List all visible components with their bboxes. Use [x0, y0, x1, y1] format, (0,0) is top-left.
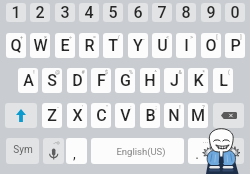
- button[interactable]: ,: [66, 138, 87, 164]
- button[interactable]: D: [67, 68, 87, 93]
- button[interactable]: G: [115, 68, 135, 93]
- staticText: W: [33, 36, 48, 55]
- staticText: $: [105, 69, 108, 75]
- button[interactable]: L: [213, 68, 233, 93]
- staticText: :: [130, 104, 132, 110]
- staticText: ×: [44, 34, 47, 40]
- staticText: 7: [157, 3, 167, 22]
- staticText: U: [157, 36, 168, 55]
- button[interactable]: Shift: [5, 103, 37, 128]
- button[interactable]: .: [188, 138, 209, 164]
- staticText: !: [179, 104, 181, 110]
- button[interactable]: 6: [128, 3, 148, 22]
- button[interactable]: N: [164, 103, 184, 128]
- staticText: -: [57, 104, 59, 110]
- staticText: /: [117, 34, 120, 40]
- staticText: !: [33, 69, 35, 75]
- staticText: @: [55, 69, 60, 75]
- button[interactable]: I: [176, 33, 196, 58]
- button[interactable]: 9: [201, 3, 221, 22]
- button[interactable]: E: [55, 33, 75, 58]
- button[interactable]: Enter: [213, 138, 244, 164]
- button[interactable]: 5: [103, 3, 123, 22]
- staticText: Sym: [13, 144, 33, 156]
- button[interactable]: V: [115, 103, 135, 128]
- button[interactable]: Q: [6, 33, 26, 58]
- button[interactable]: H: [140, 68, 160, 93]
- staticText: R: [84, 36, 95, 55]
- staticText: K: [193, 71, 204, 90]
- staticText: *: [202, 69, 205, 75]
- button[interactable]: Z: [42, 103, 62, 128]
- staticText: [: [216, 34, 218, 40]
- button[interactable]: R: [79, 33, 99, 58]
- staticText: .: [195, 146, 199, 162]
- staticText: 8: [181, 3, 191, 22]
- staticText: I: [184, 36, 189, 55]
- staticText: ?: [202, 104, 205, 110]
- staticText: &: [178, 69, 182, 75]
- button[interactable]: U: [152, 33, 172, 58]
- staticText: +: [20, 34, 23, 40]
- button[interactable]: 2: [30, 3, 50, 22]
- staticText: S: [47, 71, 57, 90]
- button[interactable]: X: [67, 103, 87, 128]
- staticText: ^: [154, 69, 157, 75]
- button[interactable]: Backspace: [213, 103, 244, 128]
- button[interactable]: Y: [128, 33, 148, 58]
- staticText: ]: [240, 34, 242, 40]
- staticText: ⋯: [203, 139, 208, 145]
- staticText: B: [145, 106, 156, 125]
- staticText: D: [72, 71, 83, 90]
- staticText: 6: [133, 3, 143, 22]
- button[interactable]: 8: [176, 3, 196, 22]
- staticText: 2: [35, 3, 45, 22]
- staticText: 9: [206, 3, 216, 22]
- button[interactable]: C: [91, 103, 111, 128]
- button[interactable]: S: [42, 68, 62, 93]
- staticText: T: [108, 36, 118, 55]
- staticText: ,: [73, 146, 76, 162]
- staticText: O: [205, 36, 217, 55]
- staticText: 4: [84, 3, 94, 22]
- button[interactable]: P: [225, 33, 245, 58]
- button[interactable]: 0: [225, 3, 245, 22]
- button[interactable]: English(US): [91, 138, 184, 164]
- staticText: C: [96, 106, 107, 125]
- staticText: >: [190, 34, 193, 40]
- staticText: Q: [10, 36, 22, 55]
- button[interactable]: M: [188, 103, 208, 128]
- staticText: X: [72, 106, 83, 125]
- staticText: English(US): [116, 146, 166, 157]
- button[interactable]: 1: [6, 3, 26, 22]
- button[interactable]: Voice input: [43, 138, 64, 164]
- button[interactable]: O: [201, 33, 221, 58]
- button[interactable]: B: [140, 103, 160, 128]
- button[interactable]: 7: [152, 3, 172, 22]
- staticText: 1: [11, 3, 21, 22]
- staticText: P: [230, 36, 241, 55]
- staticText: A: [23, 71, 34, 90]
- staticText: L: [219, 71, 228, 90]
- button[interactable]: A: [18, 68, 38, 93]
- button[interactable]: 4: [79, 3, 99, 22]
- staticText: _: [142, 34, 145, 40]
- staticText: ': [82, 104, 83, 110]
- staticText: 3: [60, 3, 70, 22]
- button[interactable]: 3: [55, 3, 75, 22]
- staticText: 5: [108, 3, 118, 22]
- staticText: ÷: [69, 34, 72, 40]
- staticText: Y: [133, 36, 143, 55]
- button[interactable]: T: [103, 33, 123, 58]
- staticText: ": [106, 104, 108, 110]
- button[interactable]: Sym: [6, 138, 39, 164]
- button[interactable]: W: [30, 33, 50, 58]
- button[interactable]: F: [91, 68, 111, 93]
- staticText: E: [60, 36, 70, 55]
- staticText: G: [120, 71, 131, 90]
- staticText: (: [228, 69, 230, 75]
- button[interactable]: J: [164, 68, 184, 93]
- button[interactable]: K: [188, 68, 208, 93]
- staticText: V: [120, 106, 131, 125]
- staticText: N: [168, 106, 180, 125]
